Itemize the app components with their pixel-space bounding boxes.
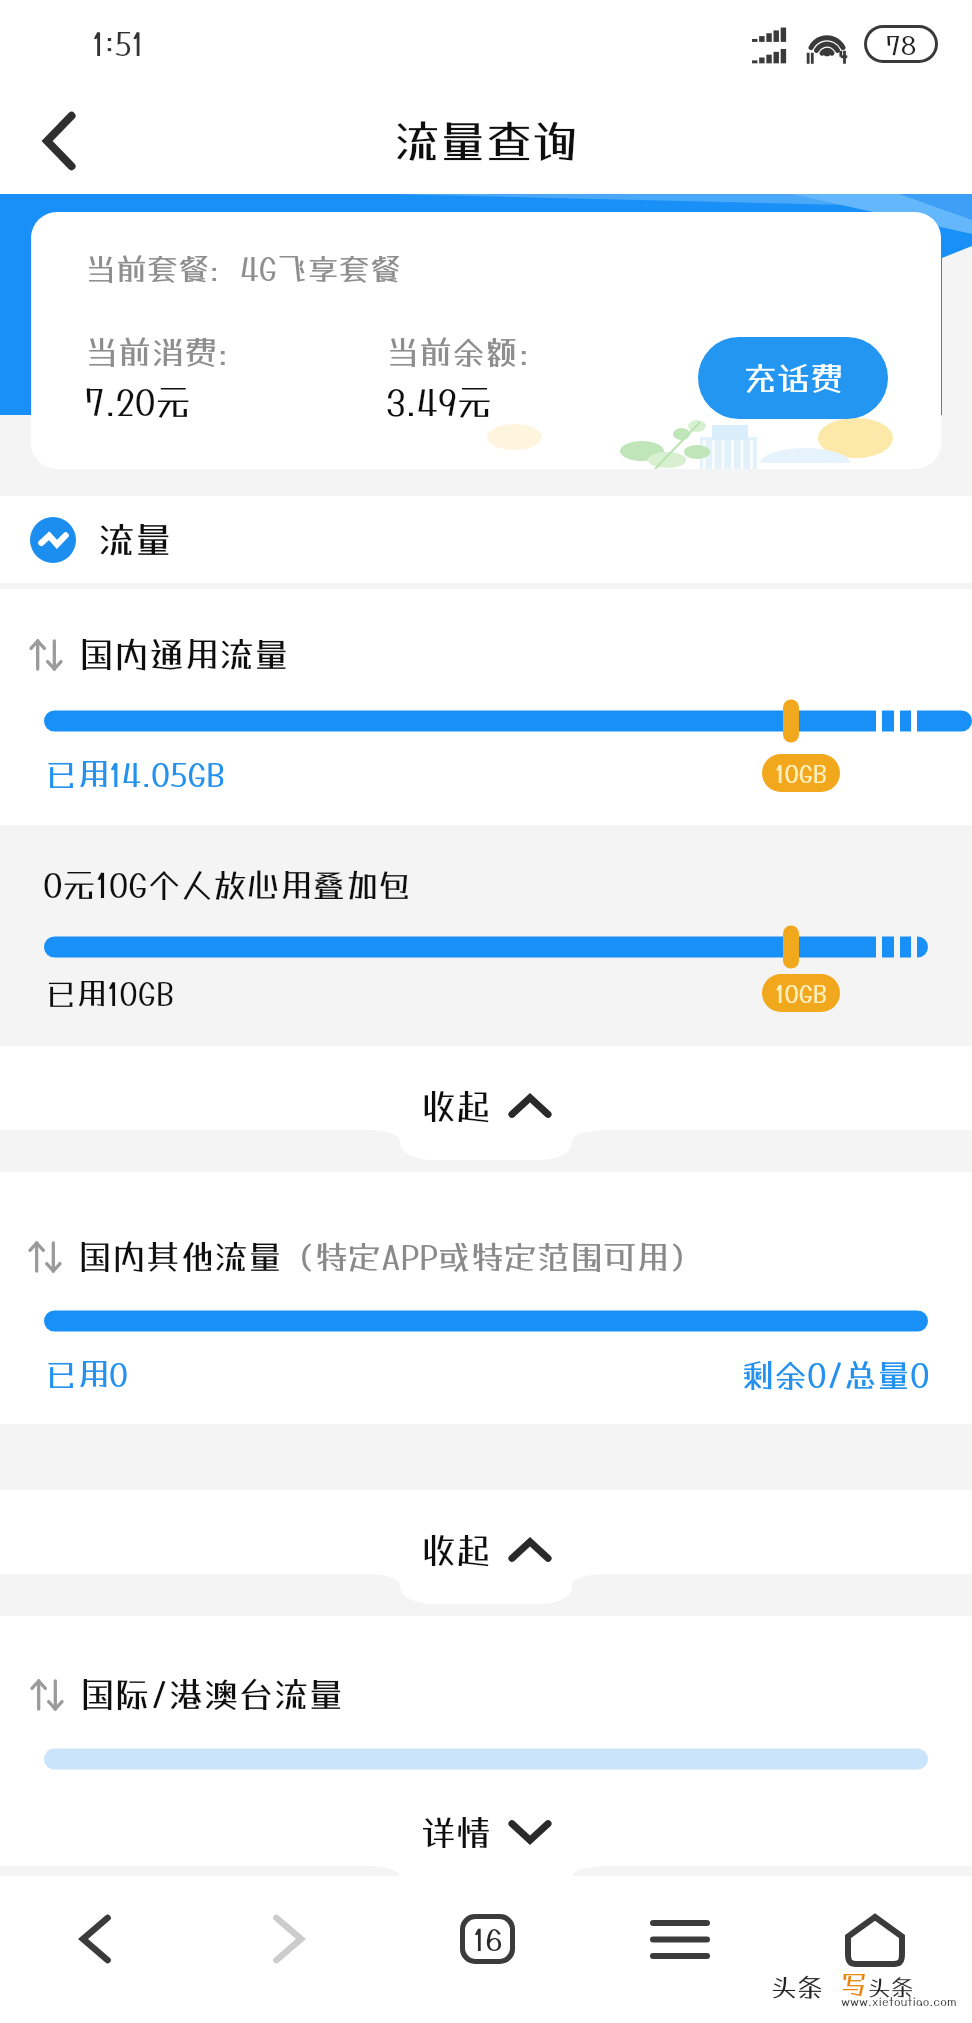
staticText: www.xietoutiao.com xyxy=(841,1994,957,2008)
staticText: 当前余额： xyxy=(386,333,551,372)
button[interactable]: 收起 xyxy=(421,1073,551,1139)
staticText: 剩余0/总量0 xyxy=(741,1356,930,1395)
staticText: 流量 xyxy=(98,518,172,562)
staticText: 10GB xyxy=(775,979,828,1007)
staticText: 详情 xyxy=(421,1812,492,1853)
staticText: 78 xyxy=(886,29,917,60)
staticText: 7.20元 xyxy=(85,382,191,423)
staticText: 已用14.05GB xyxy=(45,756,226,794)
staticText: 国际/港澳台流量 xyxy=(80,1674,344,1715)
staticText: （特定APP或特定范围可用） xyxy=(282,1238,703,1277)
button[interactable]: Menu xyxy=(632,1891,728,1987)
button[interactable]: 充话费 xyxy=(698,337,888,419)
staticText: 国内通用流量 xyxy=(79,634,290,675)
staticText: 国内其他流量 xyxy=(78,1237,282,1277)
staticText: 头条 xyxy=(868,1973,914,2000)
button[interactable]: 流量 xyxy=(30,517,172,563)
staticText: 10GB xyxy=(775,759,828,787)
staticText: 当前消费： xyxy=(85,333,250,372)
staticText: 头条 xyxy=(771,1971,824,2002)
staticText: 已用10GB xyxy=(45,976,175,1013)
staticText: 0元10G个人放心用叠加包 xyxy=(43,866,412,905)
staticText: 充话费 xyxy=(744,359,843,398)
staticText: 已用0 xyxy=(45,1356,129,1394)
button[interactable]: Home xyxy=(827,1891,923,1987)
button[interactable]: Back xyxy=(20,101,100,181)
button[interactable]: 详情 xyxy=(421,1807,551,1857)
staticText: 收起 xyxy=(421,1530,492,1571)
button[interactable]: Forward xyxy=(241,1891,337,1987)
staticText: 流量查询 xyxy=(394,114,578,168)
staticText: 收起 xyxy=(421,1086,492,1127)
button[interactable]: 收起 xyxy=(421,1517,551,1583)
button[interactable]: Back xyxy=(47,1891,143,1987)
staticText: 3.49元 xyxy=(386,382,492,423)
staticText: 当前套餐：4G飞享套餐 xyxy=(85,251,401,288)
staticText: 16 xyxy=(473,1922,503,1957)
staticText: 写 xyxy=(841,1969,868,2000)
staticText: 1:51 xyxy=(92,26,144,63)
button[interactable]: Tabs, 16 open xyxy=(439,1891,535,1987)
